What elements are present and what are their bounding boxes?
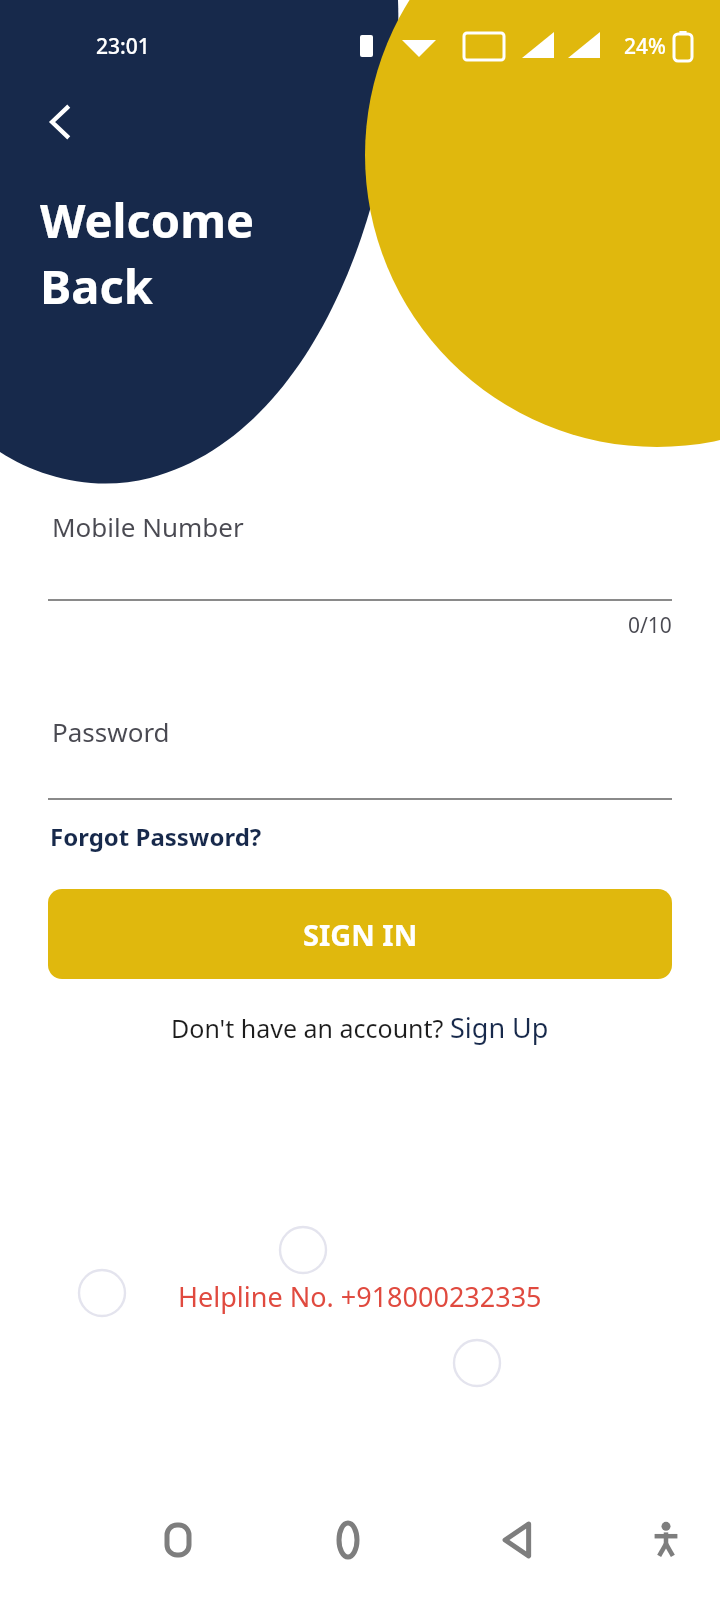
button[interactable]: SIGN IN [48,889,672,979]
button[interactable]: Password [48,710,672,798]
staticText: Password [52,714,170,749]
staticText: Welcome [40,188,255,252]
button[interactable]: Helpline No. +918000232335 [0,1278,720,1315]
staticText: Forgot Password? [50,820,262,853]
button[interactable]: Home [318,1510,378,1570]
staticText: 23:01 [96,32,150,61]
staticText: SIGN IN [303,915,418,954]
button[interactable]: Back [30,92,90,152]
button[interactable]: Back [488,1510,548,1570]
staticText: 24% [624,32,666,61]
button[interactable]: Sign Up [450,1009,549,1046]
staticText: Back [40,254,153,318]
staticText: Helpline No. +918000232335 [178,1278,542,1315]
button[interactable]: Recents [148,1510,208,1570]
staticText: Don't have an account? [171,1011,450,1045]
button[interactable]: Accessibility [636,1510,696,1570]
staticText: 0/10 [628,611,672,640]
staticText: Sign Up [450,1009,549,1046]
button[interactable]: Mobile Number [48,505,672,599]
button[interactable]: Forgot Password? [48,820,262,853]
staticText: Mobile Number [52,509,244,544]
